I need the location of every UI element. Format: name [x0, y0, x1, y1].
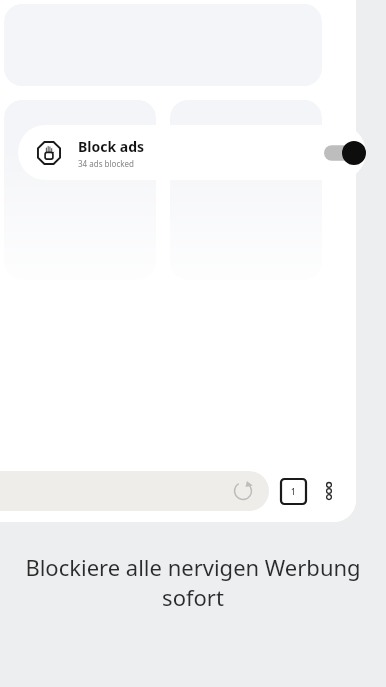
button[interactable]: Block ads toggle — [324, 141, 366, 165]
staticText: 1 — [291, 486, 296, 497]
staticText: Blockiere alle nervigen Werbung sofort — [8, 552, 378, 612]
button[interactable]: Block ads — [18, 125, 366, 180]
staticText: Block ads — [78, 137, 145, 156]
button[interactable]: Reload — [0, 471, 269, 511]
button[interactable]: More options — [316, 478, 342, 504]
staticText: 34 ads blocked — [78, 158, 134, 169]
button[interactable]: Tabs — [281, 479, 306, 504]
other: Reload — [233, 481, 253, 501]
